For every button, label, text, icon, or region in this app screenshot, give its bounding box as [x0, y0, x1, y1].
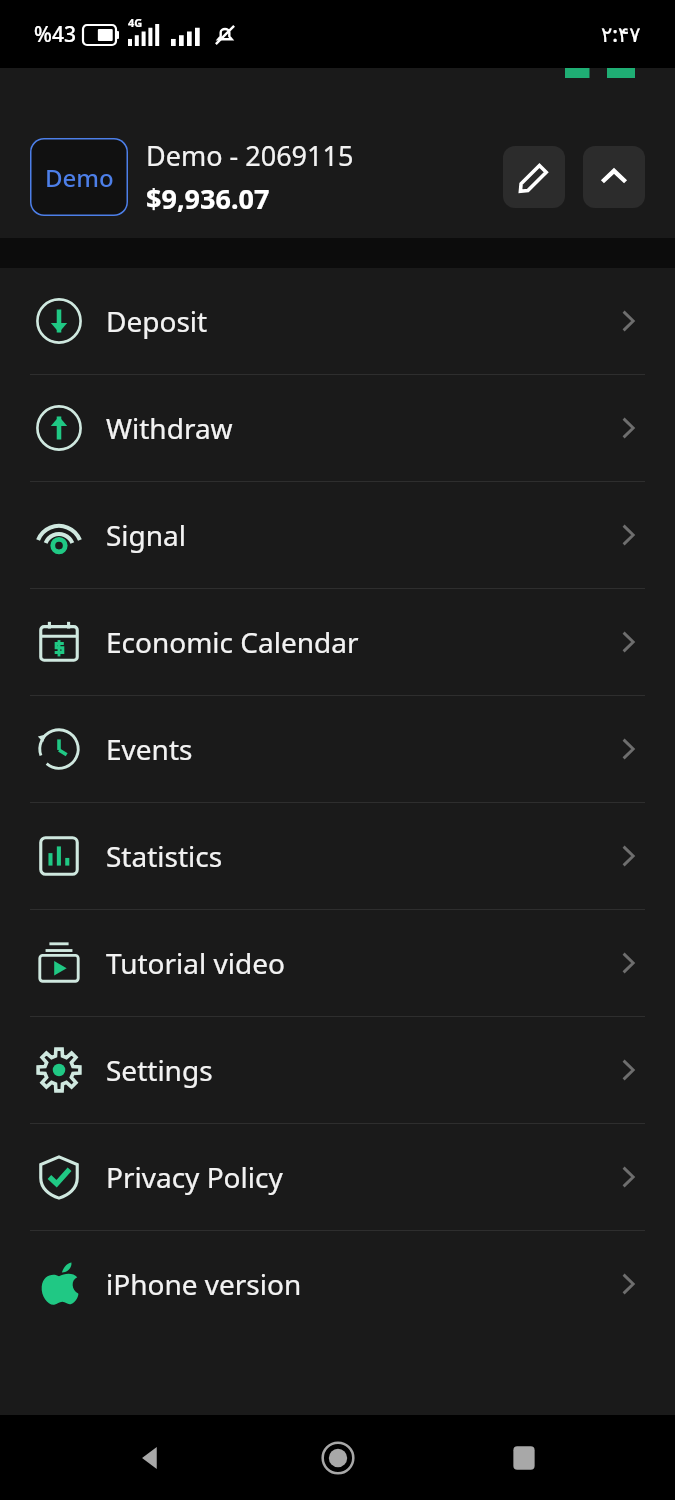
staticText: Deposit	[106, 302, 208, 340]
staticText: Demo	[45, 161, 114, 194]
button[interactable]: iPhone version	[0, 1231, 675, 1337]
staticText: ۲:۴۷	[601, 20, 641, 49]
button[interactable]: Demo	[30, 138, 128, 216]
staticText: $9,936.07	[146, 180, 270, 217]
staticText: Demo - 2069115	[146, 137, 354, 174]
button[interactable]: Economic Calendar	[0, 589, 675, 695]
button[interactable]: Withdraw	[0, 375, 675, 481]
button[interactable]: Home	[303, 1423, 373, 1493]
button[interactable]: Edit account	[503, 146, 565, 208]
staticText: iPhone version	[106, 1265, 302, 1303]
button[interactable]: Settings	[0, 1017, 675, 1123]
staticText: Withdraw	[106, 409, 233, 447]
button[interactable]: Back	[116, 1423, 186, 1493]
staticText: Economic Calendar	[106, 623, 359, 661]
staticText: Statistics	[106, 837, 223, 875]
staticText: 4G	[128, 15, 143, 30]
staticText: %43	[34, 20, 76, 49]
button[interactable]: Recent apps	[489, 1423, 559, 1493]
staticText: Events	[106, 730, 193, 768]
button[interactable]: Privacy Policy	[0, 1124, 675, 1230]
button[interactable]: Events	[0, 696, 675, 802]
staticText: Tutorial video	[106, 944, 285, 982]
button[interactable]: Collapse	[583, 146, 645, 208]
button[interactable]: Signal	[0, 482, 675, 588]
button[interactable]: Deposit	[0, 268, 675, 374]
staticText: Settings	[106, 1051, 213, 1089]
button[interactable]: Statistics	[0, 803, 675, 909]
staticText: Signal	[106, 516, 187, 554]
button[interactable]: Tutorial video	[0, 910, 675, 1016]
staticText: Privacy Policy	[106, 1158, 283, 1196]
